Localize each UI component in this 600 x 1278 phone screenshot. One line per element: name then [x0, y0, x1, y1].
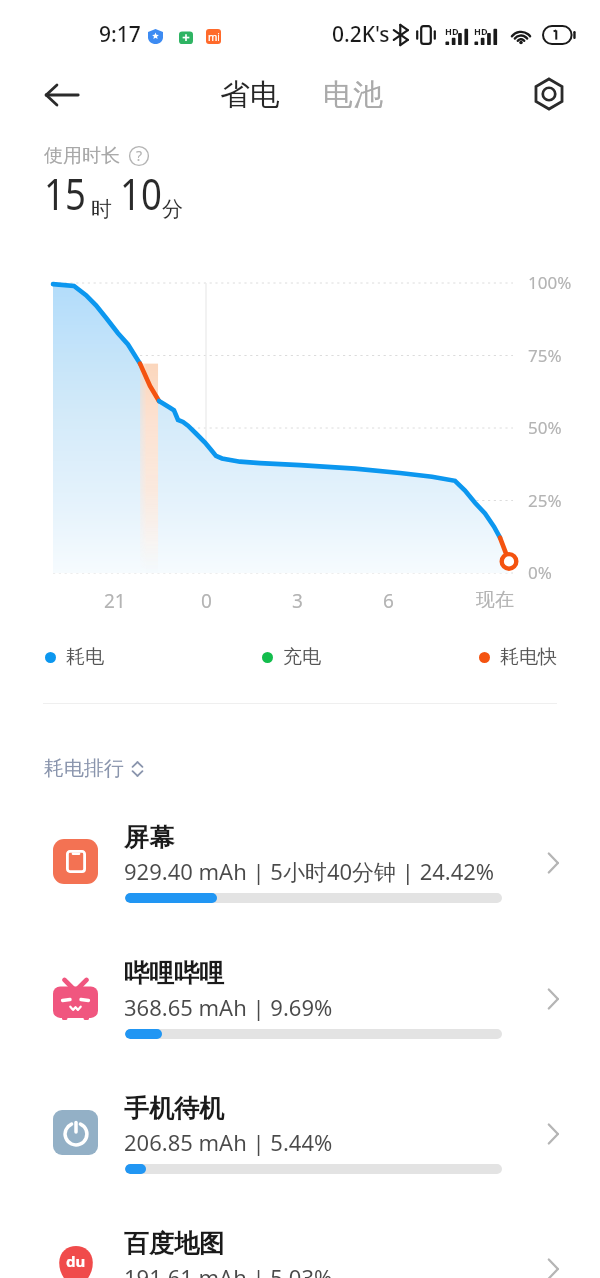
staticText: du — [66, 1251, 86, 1271]
staticText: 21 — [104, 588, 126, 614]
button[interactable] — [0, 804, 600, 932]
staticText: 哔哩哔哩 — [124, 958, 224, 989]
staticText: 手机待机 — [124, 1093, 224, 1124]
button[interactable] — [0, 940, 600, 1068]
staticText: 10 — [120, 163, 162, 223]
button[interactable]: Settings — [525, 70, 573, 118]
button[interactable]: Back — [38, 71, 86, 119]
staticText: 现在 — [476, 588, 514, 612]
button[interactable] — [0, 1210, 600, 1278]
staticText: 206.85 mAh | 5.44% — [124, 1127, 333, 1157]
button[interactable]: 省电 — [212, 68, 288, 122]
staticText: ? — [136, 146, 143, 165]
staticText: 3 — [292, 588, 303, 614]
staticText: 191.61 mAh | 5.03% — [124, 1262, 333, 1278]
staticText: 15 — [44, 163, 86, 223]
button[interactable] — [0, 1075, 600, 1203]
staticText: 时 — [91, 196, 112, 222]
staticText: 使用时长 — [44, 144, 120, 168]
staticText: 0.2K's — [332, 20, 390, 49]
staticText: 电池 — [323, 76, 383, 114]
staticText: 25% — [528, 489, 562, 512]
staticText: 929.40 mAh | 5小时40分钟 | 24.42% — [124, 856, 495, 886]
staticText: HD — [445, 25, 459, 37]
button[interactable]: 电池 — [315, 68, 391, 122]
staticText: 充电 — [283, 645, 321, 669]
staticText: 耗电 — [66, 645, 104, 669]
staticText: 75% — [528, 344, 562, 367]
button[interactable]: 耗电 — [45, 645, 104, 669]
staticText: 屏幕 — [124, 822, 174, 853]
button[interactable]: 耗电排行 — [44, 752, 144, 785]
staticText: 分 — [162, 196, 183, 222]
staticText: 0% — [528, 561, 552, 584]
button[interactable]: 充电 — [262, 645, 321, 669]
staticText: 省电 — [220, 76, 280, 114]
staticText: 6 — [383, 588, 394, 614]
button[interactable]: 耗电快 — [479, 645, 557, 669]
staticText: HD — [474, 25, 488, 37]
staticText: 耗电排行 — [44, 756, 124, 781]
staticText: 0 — [201, 588, 212, 614]
staticText: 100% — [528, 271, 572, 294]
staticText: 耗电快 — [500, 645, 557, 669]
staticText: mi — [208, 30, 220, 44]
staticText: 50% — [528, 416, 562, 439]
staticText: 368.65 mAh | 9.69% — [124, 992, 333, 1022]
staticText: 9:17 — [99, 20, 141, 49]
staticText: 百度地图 — [124, 1228, 224, 1259]
